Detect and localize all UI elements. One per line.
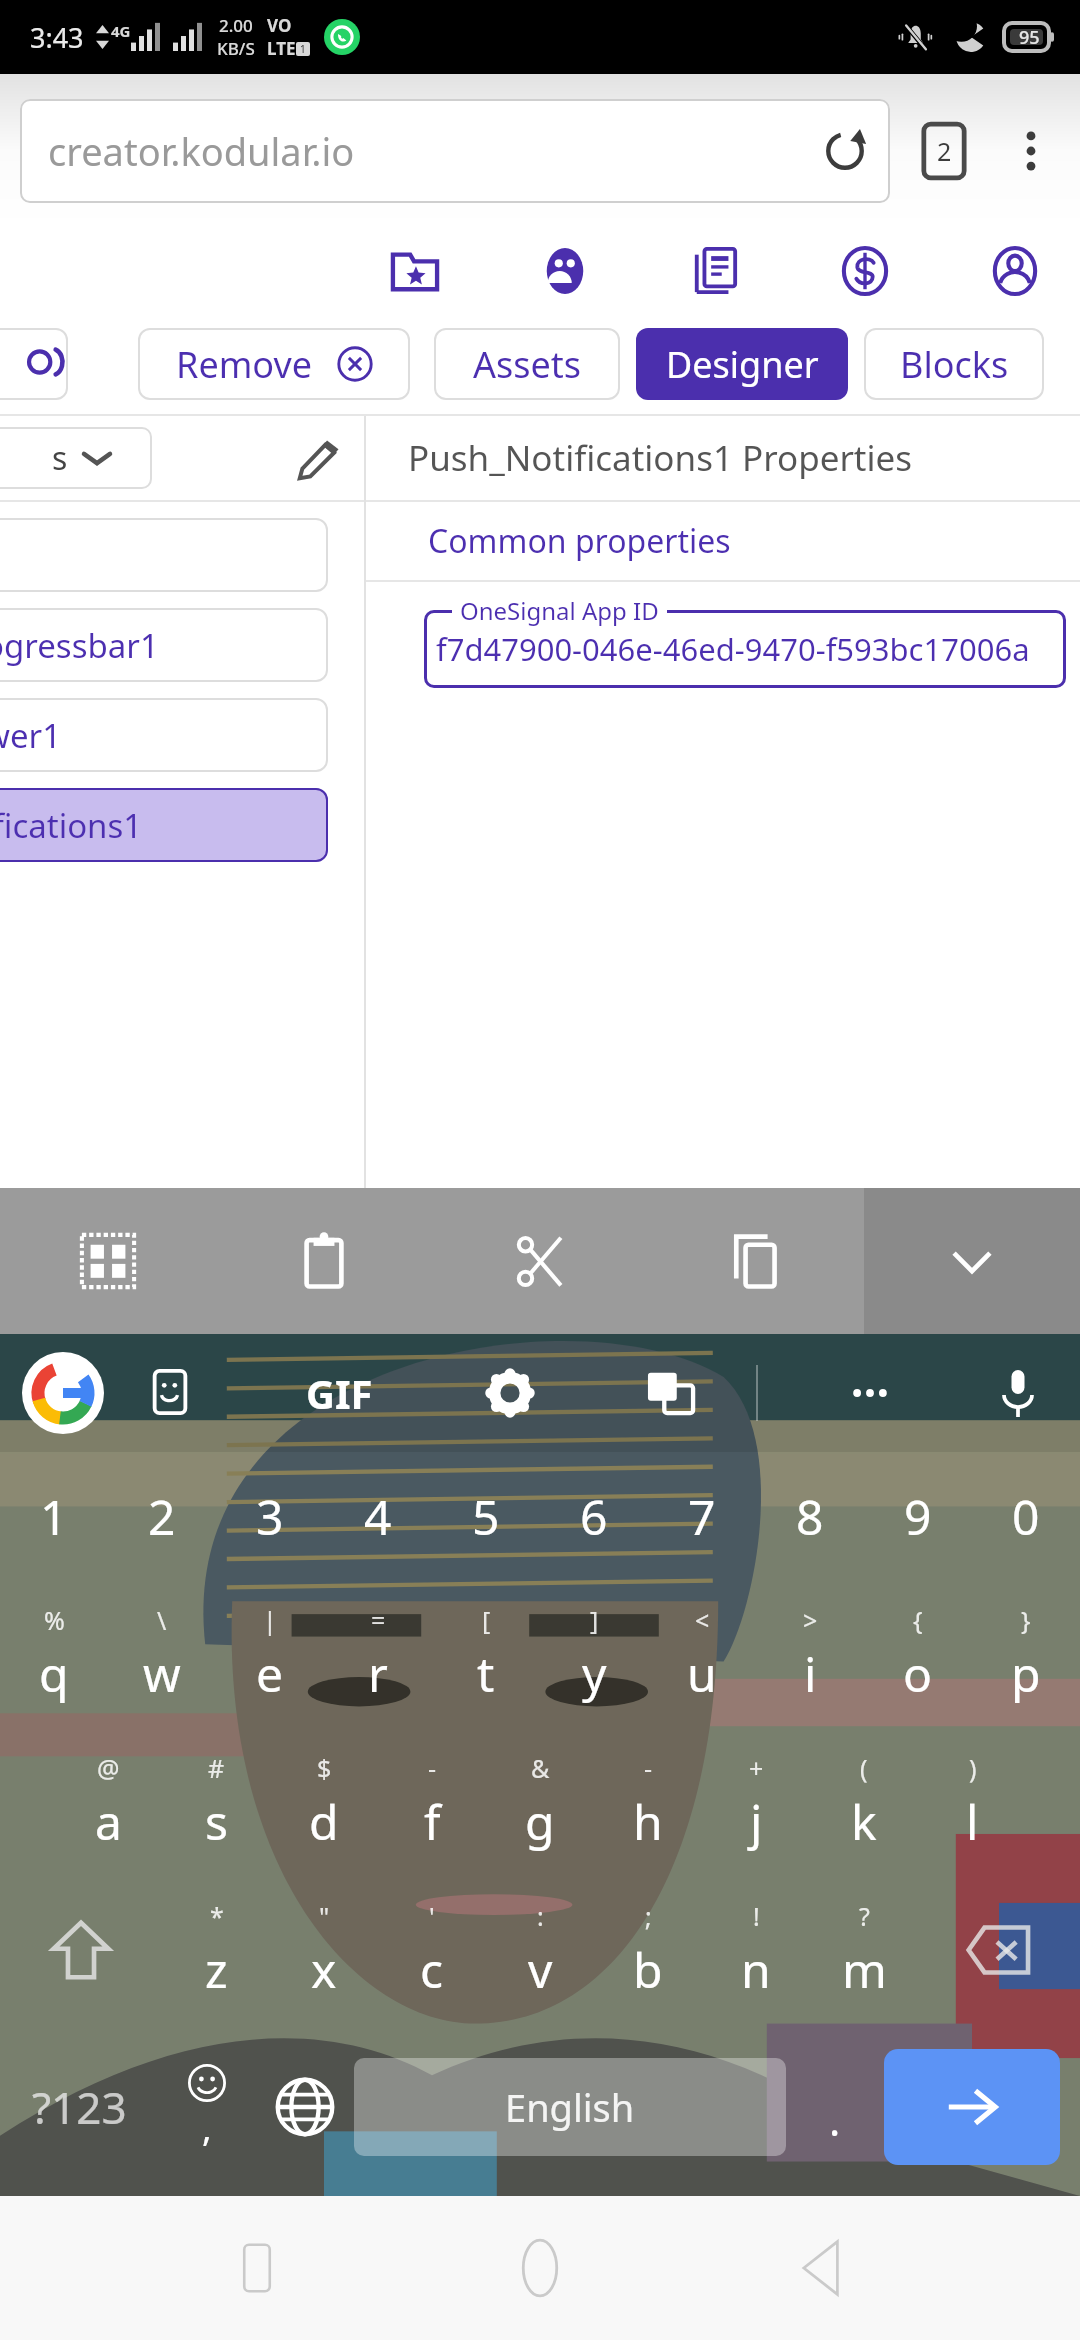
button[interactable]: 2 <box>108 1452 216 1580</box>
button[interactable]: 5 <box>432 1452 540 1580</box>
button[interactable]: - <box>378 1728 486 1876</box>
button[interactable] <box>0 518 328 592</box>
staticText: 7 <box>688 1484 716 1549</box>
button[interactable]: 8 <box>756 1452 864 1580</box>
button[interactable]: Recents <box>205 2216 309 2320</box>
button[interactable]: Tabs <box>912 119 976 183</box>
staticText: g <box>525 1789 555 1854</box>
button[interactable]: ogressbar1 <box>0 608 328 682</box>
button[interactable]: creator.kodular.io <box>20 99 890 203</box>
button[interactable]: | <box>216 1580 324 1728</box>
staticText: @ <box>97 1751 120 1785</box>
staticText: f7d47900-046e-46ed-9470-f593bc17006a <box>436 628 1030 670</box>
staticText: ? <box>859 1899 870 1933</box>
staticText: 4G <box>111 21 131 41</box>
button[interactable]: & <box>486 1728 594 1876</box>
button[interactable]: Collapse <box>864 1188 1080 1334</box>
button[interactable]: = <box>324 1580 432 1728</box>
button[interactable]: Enter <box>884 2049 1060 2165</box>
staticText: GIF <box>306 1366 373 1420</box>
button[interactable]: Back <box>771 2216 875 2320</box>
button[interactable]: ; <box>594 1876 702 2024</box>
button[interactable]: ?123 <box>0 2024 158 2190</box>
button[interactable]: % <box>0 1580 108 1728</box>
button[interactable]: 9 <box>864 1452 972 1580</box>
button[interactable]: Shift <box>0 1876 162 2024</box>
button[interactable]: ] <box>540 1580 648 1728</box>
button[interactable]: Monetize <box>832 238 898 304</box>
button[interactable]: $ <box>270 1728 378 1876</box>
button[interactable]: Voice input <box>982 1357 1054 1429</box>
staticText: VO <box>267 14 292 37</box>
button[interactable]: . <box>786 2024 884 2190</box>
button[interactable]: < <box>648 1580 756 1728</box>
button[interactable]: Blocks <box>864 328 1044 400</box>
button[interactable]: Copy <box>648 1188 864 1334</box>
button[interactable]: f7d47900-046e-46ed-9470-f593bc17006a <box>424 610 1066 688</box>
staticText: { <box>913 1603 923 1637</box>
button[interactable]: : <box>486 1876 594 2024</box>
staticText: ' <box>429 1899 435 1933</box>
button[interactable]: English <box>354 2058 786 2156</box>
button[interactable]: 0 <box>972 1452 1080 1580</box>
button[interactable]: Documentation <box>682 238 748 304</box>
button[interactable]: Select all <box>0 1188 216 1334</box>
button[interactable]: ) <box>918 1728 1026 1876</box>
button[interactable]: 6 <box>540 1452 648 1580</box>
button[interactable]: wer1 <box>0 698 328 772</box>
button[interactable]: ! <box>702 1876 810 2024</box>
button[interactable]: Emoji <box>158 2024 256 2190</box>
button[interactable]: 4 <box>324 1452 432 1580</box>
staticText: u <box>687 1641 717 1706</box>
button[interactable]: Remove <box>138 328 410 400</box>
button[interactable]: Stickers <box>134 1357 206 1429</box>
staticText: ] <box>590 1603 599 1637</box>
button[interactable]: } <box>972 1580 1080 1728</box>
staticText: c <box>420 1937 444 2002</box>
button[interactable]: ( <box>810 1728 918 1876</box>
staticText: < <box>695 1603 710 1637</box>
button[interactable]: Translate <box>635 1357 707 1429</box>
button[interactable]: @ <box>54 1728 162 1876</box>
button[interactable]: Community <box>532 238 598 304</box>
button[interactable]: Designer <box>636 328 848 400</box>
button[interactable]: Reload <box>816 122 874 180</box>
button[interactable]: 1 <box>0 1452 108 1580</box>
button[interactable]: Backspace <box>918 1876 1080 2024</box>
button[interactable]: \ <box>108 1580 216 1728</box>
staticText: v <box>528 1937 553 2002</box>
button[interactable]: * <box>162 1876 270 2024</box>
button[interactable]: ifications1 <box>0 788 328 862</box>
button[interactable]: More options <box>1002 122 1060 180</box>
button[interactable]: Assets <box>434 328 620 400</box>
button[interactable]: [ <box>432 1580 540 1728</box>
button[interactable]: Paste <box>216 1188 432 1334</box>
button[interactable]: Home <box>488 2216 592 2320</box>
button[interactable]: { <box>864 1580 972 1728</box>
button[interactable]: # <box>162 1728 270 1876</box>
button[interactable]: 7 <box>648 1452 756 1580</box>
staticText: 8 <box>796 1484 824 1549</box>
button[interactable]: Google <box>22 1352 104 1434</box>
button[interactable]: Connect <box>0 328 68 400</box>
button[interactable]: Rename <box>284 422 356 494</box>
button[interactable]: 3 <box>216 1452 324 1580</box>
button[interactable]: " <box>270 1876 378 2024</box>
button[interactable]: Change language <box>256 2024 354 2190</box>
staticText: m <box>842 1937 887 2002</box>
staticText: } <box>1021 1603 1031 1637</box>
button[interactable]: ? <box>810 1876 918 2024</box>
button[interactable]: Settings <box>474 1357 546 1429</box>
button[interactable]: s <box>0 427 152 489</box>
button[interactable]: Account <box>982 238 1048 304</box>
button[interactable]: Cut <box>432 1188 648 1334</box>
button[interactable]: > <box>756 1580 864 1728</box>
button[interactable]: + <box>702 1728 810 1876</box>
staticText: z <box>205 1937 228 2002</box>
button[interactable]: Projects <box>382 238 448 304</box>
button[interactable]: - <box>594 1728 702 1876</box>
staticText: [ <box>482 1603 491 1637</box>
button[interactable]: ' <box>378 1876 486 2024</box>
button[interactable]: More <box>834 1357 906 1429</box>
button[interactable]: GIF <box>306 1366 373 1420</box>
